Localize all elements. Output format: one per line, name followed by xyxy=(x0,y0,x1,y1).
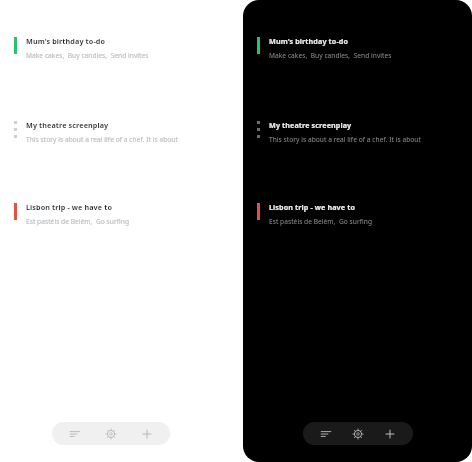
staticText: Make cakes, Buy candles, Send invites xyxy=(26,51,149,60)
button[interactable]: Settings xyxy=(102,425,120,443)
staticText: My theatre screenplay xyxy=(269,120,352,130)
staticText: Lisbon trip - we have to xyxy=(269,202,355,212)
button[interactable]: Add note xyxy=(138,425,156,443)
button[interactable]: Mum's birthday to-do xyxy=(0,36,222,60)
staticText: Make cakes, Buy candles, Send invites xyxy=(269,51,392,60)
button[interactable]: Lisbon trip - we have to xyxy=(243,202,472,226)
button[interactable]: Sort notes xyxy=(317,425,335,443)
staticText: Mum's birthday to-do xyxy=(26,36,106,46)
button[interactable]: Add note xyxy=(381,425,399,443)
staticText: Mum's birthday to-do xyxy=(269,36,349,46)
button[interactable]: My theatre screenplay xyxy=(0,120,222,144)
button[interactable]: Mum's birthday to-do xyxy=(243,36,472,60)
button[interactable]: Settings xyxy=(349,425,367,443)
staticText: Lisbon trip - we have to xyxy=(26,202,112,212)
button[interactable]: Lisbon trip - we have to xyxy=(0,202,222,226)
staticText: Est pastéis de Belém, Go surfing xyxy=(26,217,129,226)
staticText: My theatre screenplay xyxy=(26,120,109,130)
staticText: Est pastéis de Belém, Go surfing xyxy=(269,217,372,226)
staticText: This story is about a real life of a che… xyxy=(26,135,178,144)
staticText: This story is about a real life of a che… xyxy=(269,135,421,144)
button[interactable]: My theatre screenplay xyxy=(243,120,472,144)
button[interactable]: Sort notes xyxy=(66,425,84,443)
